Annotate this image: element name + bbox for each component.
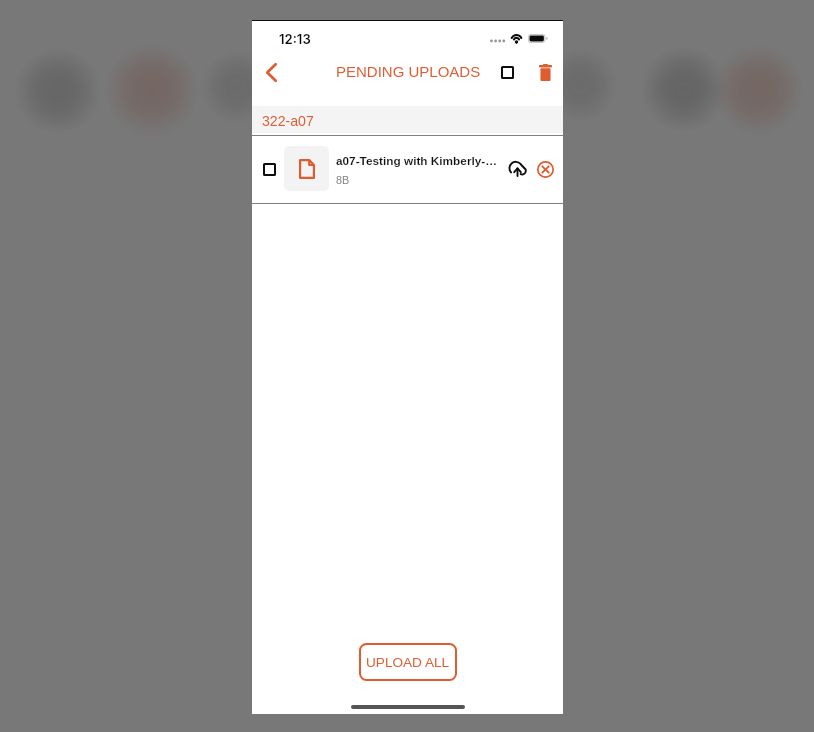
button[interactable]: Upload	[502, 154, 532, 184]
staticText: UPLOAD ALL	[366, 655, 450, 670]
staticText: 12:13	[279, 31, 311, 47]
button[interactable]: 322-a07	[252, 106, 563, 133]
button[interactable]: Select all	[489, 53, 525, 91]
button[interactable]: a07-Testing with Kimberly-…	[252, 135, 563, 203]
button[interactable]: Back	[252, 52, 290, 92]
staticText: 8B	[336, 174, 350, 186]
staticText: a07-Testing with Kimberly-…	[336, 154, 498, 167]
button[interactable]: Delete	[528, 53, 563, 91]
staticText: 322-a07	[262, 113, 314, 129]
button[interactable]: UPLOAD ALL	[359, 643, 457, 681]
button[interactable]: Cancel	[530, 154, 560, 184]
staticText: PENDING UPLOADS	[336, 63, 481, 80]
